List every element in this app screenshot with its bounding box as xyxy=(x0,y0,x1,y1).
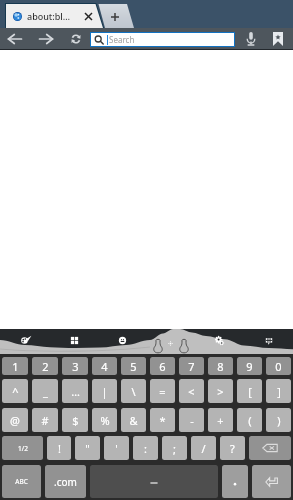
button[interactable]: / xyxy=(191,436,216,460)
button[interactable]: Settings xyxy=(214,335,225,346)
button[interactable]: 2 xyxy=(32,357,58,375)
button[interactable]: ] xyxy=(266,379,291,403)
staticText: $ xyxy=(72,413,79,428)
button[interactable]: $ xyxy=(62,408,88,432)
button[interactable]: Voice input xyxy=(153,339,163,353)
button[interactable]: New tab xyxy=(96,4,134,28)
button[interactable]: = xyxy=(150,379,175,403)
staticText: ; xyxy=(173,441,176,456)
button[interactable]: 5 xyxy=(121,357,146,375)
staticText: ! xyxy=(58,441,61,456)
button[interactable]: - xyxy=(179,408,204,432)
staticText: ' xyxy=(115,441,118,456)
button[interactable]: … xyxy=(62,379,88,403)
button[interactable] xyxy=(222,465,248,498)
button[interactable]: | xyxy=(92,379,117,403)
staticText: .com xyxy=(54,475,77,489)
staticText: # xyxy=(41,413,49,428)
staticText: 6 xyxy=(159,359,166,374)
button[interactable]: Voice search xyxy=(240,28,262,50)
staticText: = xyxy=(159,384,166,399)
staticText: " xyxy=(85,441,90,456)
button[interactable]: 1/2 xyxy=(2,436,43,460)
button[interactable]: 8 xyxy=(208,357,233,375)
button[interactable]: ^ xyxy=(2,379,28,403)
staticText: [ xyxy=(248,384,252,399)
staticText: _ xyxy=(43,384,48,399)
button[interactable]: & xyxy=(121,408,146,432)
staticText: 8 xyxy=(217,359,224,374)
button[interactable]: ; xyxy=(162,436,187,460)
staticText: 7 xyxy=(188,359,195,374)
staticText: & xyxy=(129,413,138,428)
button[interactable]: .com xyxy=(45,465,86,498)
button[interactable]: ? xyxy=(220,436,245,460)
button[interactable]: about:bl… xyxy=(5,4,104,28)
button[interactable]: Swype xyxy=(19,335,30,346)
button[interactable]: > xyxy=(208,379,233,403)
button[interactable]: Bookmarks xyxy=(267,28,289,50)
button[interactable]: ( xyxy=(237,408,262,432)
button[interactable]: _ xyxy=(32,379,58,403)
staticText: Search xyxy=(109,34,135,45)
staticText: 2 xyxy=(42,359,49,374)
staticText: * xyxy=(159,413,166,428)
staticText: 1/2 xyxy=(18,444,28,453)
button[interactable]: Move keyboard xyxy=(167,340,174,347)
button[interactable]: ! xyxy=(47,436,71,460)
button[interactable]: Close tab xyxy=(81,9,96,24)
staticText: 0 xyxy=(275,359,282,374)
button[interactable] xyxy=(90,465,218,498)
staticText: + xyxy=(217,413,224,428)
button[interactable]: @ xyxy=(2,408,28,432)
staticText: | xyxy=(101,384,108,399)
button[interactable]: ABC xyxy=(2,465,41,498)
staticText: - xyxy=(190,413,194,428)
staticText: ) xyxy=(277,413,281,428)
button[interactable]: Keyboard layout xyxy=(264,336,274,346)
staticText: / xyxy=(201,441,206,456)
button[interactable]: Back xyxy=(4,28,26,50)
button[interactable]: * xyxy=(150,408,175,432)
staticText: % xyxy=(100,413,110,428)
staticText: 5 xyxy=(130,359,137,374)
button[interactable]: 1 xyxy=(2,357,28,375)
button[interactable]: : xyxy=(133,436,158,460)
button[interactable]: Reload xyxy=(65,28,87,50)
button[interactable]: Voice input 2 xyxy=(179,339,189,353)
staticText: ^ xyxy=(12,384,19,399)
staticText: 4 xyxy=(101,359,108,374)
button[interactable]: " xyxy=(75,436,100,460)
button[interactable]: # xyxy=(32,408,58,432)
button[interactable]: Symbols xyxy=(69,335,80,346)
button[interactable]: [ xyxy=(237,379,262,403)
button[interactable] xyxy=(252,465,291,498)
button[interactable]: < xyxy=(179,379,204,403)
staticText: ] xyxy=(277,384,281,399)
button[interactable]: % xyxy=(92,408,117,432)
staticText: < xyxy=(188,384,195,399)
staticText: 9 xyxy=(246,359,253,374)
staticText: ABC xyxy=(15,477,28,486)
staticText: 3 xyxy=(72,359,79,374)
button[interactable]: Forward xyxy=(35,28,57,50)
button[interactable]: 3 xyxy=(62,357,88,375)
button[interactable] xyxy=(249,436,291,460)
staticText: 1 xyxy=(12,359,19,374)
button[interactable]: Emoji xyxy=(117,335,128,346)
button[interactable]: 9 xyxy=(237,357,262,375)
button[interactable]: Search xyxy=(91,33,234,46)
button[interactable]: 7 xyxy=(179,357,204,375)
staticText: : xyxy=(144,441,147,456)
staticText: ? xyxy=(230,441,235,456)
button[interactable]: ) xyxy=(266,408,291,432)
button[interactable]: 6 xyxy=(150,357,175,375)
staticText: about:bl… xyxy=(27,10,71,22)
button[interactable]: ' xyxy=(104,436,129,460)
button[interactable]: 4 xyxy=(92,357,117,375)
staticText: > xyxy=(217,384,224,399)
button[interactable]: + xyxy=(208,408,233,432)
button[interactable]: \ xyxy=(121,379,146,403)
staticText: @ xyxy=(10,413,20,428)
button[interactable]: 0 xyxy=(266,357,291,375)
